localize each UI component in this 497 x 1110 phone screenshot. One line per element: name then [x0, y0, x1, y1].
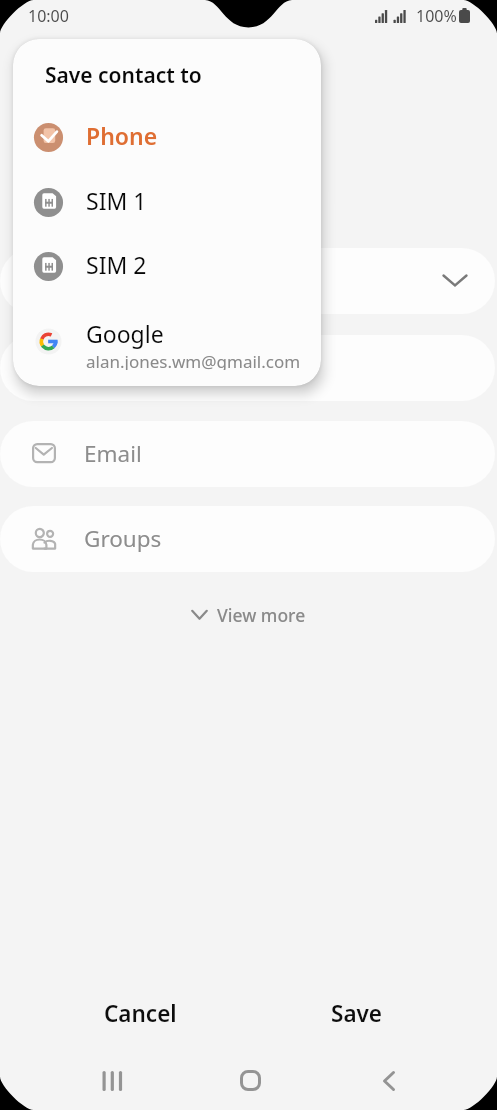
button[interactable]: Home — [220, 1051, 280, 1110]
button[interactable]: Phone — [13, 111, 321, 163]
staticText: SIM 1 — [86, 185, 147, 216]
staticText: Email — [84, 438, 142, 469]
staticText: 10:00 — [28, 5, 69, 27]
staticText: 100% — [416, 5, 457, 27]
staticText: SIM 2 — [86, 249, 147, 280]
button[interactable]: Cancel — [60, 988, 220, 1038]
button[interactable]: SIM 1 — [13, 176, 321, 228]
button[interactable]: View more — [0, 599, 497, 631]
staticText: Save — [331, 998, 383, 1029]
button[interactable]: Google — [13, 315, 321, 367]
staticText: Cancel — [104, 998, 177, 1029]
staticText: Google — [86, 318, 164, 349]
button[interactable] — [0, 335, 495, 401]
button[interactable]: Save — [277, 988, 437, 1038]
button[interactable]: SIM 2 — [13, 240, 321, 292]
button[interactable]: Recent apps — [81, 1051, 141, 1110]
staticText: Save contact to — [45, 61, 202, 90]
button[interactable]: Groups — [0, 506, 495, 572]
staticText: View more — [217, 603, 306, 627]
staticText: alan.jones.wm@gmail.com — [86, 350, 301, 370]
staticText: Phone — [86, 120, 158, 151]
button[interactable]: Back — [359, 1051, 419, 1110]
button[interactable]: Email — [0, 421, 495, 487]
button[interactable] — [0, 248, 495, 314]
staticText: Groups — [84, 523, 162, 554]
